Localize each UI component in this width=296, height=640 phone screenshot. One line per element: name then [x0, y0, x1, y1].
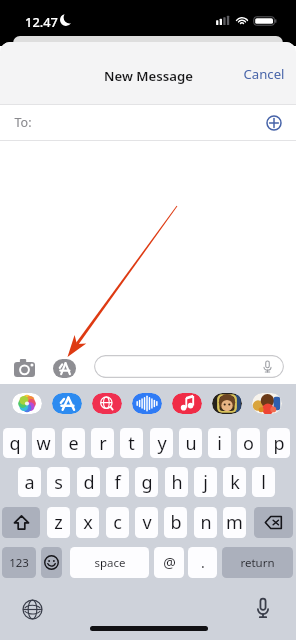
- staticText: v: [142, 510, 152, 535]
- button[interactable]: Camera: [14, 359, 35, 377]
- staticText: Cancel: [243, 65, 285, 83]
- staticText: n: [200, 510, 212, 535]
- staticText: @: [163, 553, 176, 572]
- button[interactable]: Photos: [12, 393, 42, 414]
- button[interactable]: a: [18, 467, 41, 497]
- button[interactable]: h: [165, 467, 188, 497]
- button[interactable]: .: [188, 547, 217, 578]
- button[interactable]: w: [32, 428, 55, 458]
- staticText: i: [217, 431, 222, 456]
- button[interactable]: return: [222, 547, 293, 578]
- button[interactable]: q: [3, 428, 26, 458]
- staticText: r: [99, 431, 107, 456]
- button[interactable]: 123: [2, 547, 36, 578]
- button[interactable]: Music: [172, 393, 202, 414]
- staticText: To:: [14, 114, 32, 131]
- staticText: o: [243, 431, 254, 456]
- staticText: k: [230, 470, 240, 495]
- staticText: c: [113, 510, 122, 535]
- staticText: g: [141, 470, 153, 495]
- button[interactable]: Cancel: [238, 62, 290, 86]
- button[interactable]: b: [164, 507, 187, 538]
- button[interactable]: t: [120, 428, 143, 458]
- button[interactable]: Dictate: [255, 597, 271, 619]
- staticText: 12.47: [25, 13, 58, 30]
- button[interactable]: Shift: [2, 507, 40, 538]
- button[interactable]: v: [135, 507, 158, 538]
- staticText: 123: [9, 555, 29, 571]
- staticText: z: [54, 510, 63, 535]
- staticText: l: [261, 470, 266, 495]
- staticText: b: [170, 510, 182, 535]
- button[interactable]: r: [91, 428, 114, 458]
- button[interactable]: Add contact: [264, 113, 284, 133]
- staticText: w: [36, 431, 51, 456]
- button[interactable]: k: [223, 467, 246, 497]
- staticText: m: [226, 510, 243, 535]
- staticText: d: [83, 470, 95, 495]
- button[interactable]: Apps: [53, 359, 76, 378]
- button[interactable]: Emoji: [41, 547, 62, 578]
- staticText: a: [24, 470, 35, 495]
- button[interactable]: u: [179, 428, 202, 458]
- staticText: New Message: [104, 67, 193, 85]
- button[interactable]: Memoji: [212, 393, 242, 414]
- button[interactable]: e: [62, 428, 85, 458]
- button[interactable]: New Message: [98, 65, 198, 87]
- button[interactable]: g: [135, 467, 158, 497]
- button[interactable]: n: [194, 507, 217, 538]
- button[interactable]: i: [208, 428, 231, 458]
- button[interactable]: Search: [92, 393, 122, 414]
- staticText: j: [203, 470, 208, 495]
- button[interactable]: p: [267, 428, 290, 458]
- staticText: q: [9, 431, 21, 456]
- button[interactable]: z: [47, 507, 70, 538]
- staticText: return: [240, 555, 275, 571]
- staticText: h: [171, 470, 183, 495]
- staticText: p: [273, 431, 285, 456]
- staticText: t: [128, 431, 135, 456]
- button[interactable]: l: [252, 467, 275, 497]
- button[interactable]: s: [47, 467, 70, 497]
- button[interactable]: d: [77, 467, 100, 497]
- staticText: f: [114, 470, 121, 495]
- button[interactable]: space: [70, 547, 149, 578]
- staticText: u: [185, 431, 197, 456]
- button[interactable]: x: [76, 507, 99, 538]
- button[interactable]: f: [106, 467, 129, 497]
- button[interactable]: o: [237, 428, 260, 458]
- button[interactable]: [94, 355, 284, 378]
- button[interactable]: Backspace: [254, 507, 293, 538]
- button[interactable]: Switch keyboard: [22, 599, 43, 620]
- button[interactable]: @: [154, 547, 184, 578]
- button[interactable]: y: [150, 428, 173, 458]
- staticText: y: [157, 431, 167, 456]
- button[interactable]: Voice: [132, 393, 162, 414]
- button[interactable]: j: [194, 467, 217, 497]
- button[interactable]: m: [223, 507, 246, 538]
- staticText: space: [94, 555, 126, 571]
- staticText: s: [54, 470, 63, 495]
- staticText: .: [201, 553, 205, 572]
- staticText: e: [68, 431, 79, 456]
- button[interactable]: App Store: [52, 393, 82, 414]
- button[interactable]: Sticker: [252, 393, 282, 414]
- staticText: x: [83, 510, 93, 535]
- button[interactable]: c: [106, 507, 129, 538]
